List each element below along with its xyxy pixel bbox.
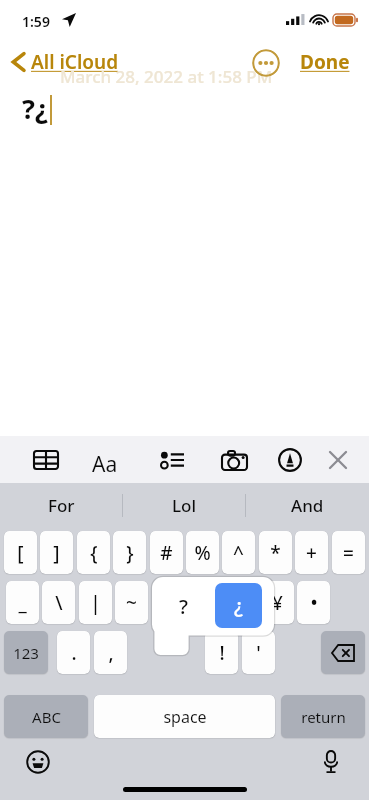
staticText: And: [291, 494, 324, 517]
staticText: space: [163, 706, 207, 728]
button[interactable]: For: [0, 483, 123, 528]
staticText: Aa: [92, 450, 118, 479]
button[interactable]: ?: [158, 581, 208, 631]
button[interactable]: {: [77, 531, 110, 574]
staticText: ^: [233, 540, 244, 566]
button[interactable]: return: [281, 695, 365, 738]
button[interactable]: }: [113, 531, 146, 574]
button[interactable]: Dictate: [315, 746, 347, 778]
button[interactable]: ABC: [4, 695, 88, 738]
button[interactable]: |: [79, 581, 112, 624]
button[interactable]: Close keyboard: [320, 442, 356, 478]
staticText: \: [55, 590, 63, 616]
button[interactable]: Markup: [272, 442, 308, 478]
button[interactable]: .: [57, 631, 90, 674]
staticText: ~: [126, 590, 137, 616]
button[interactable]: Done: [294, 46, 356, 78]
staticText: ¿: [234, 592, 243, 619]
staticText: Done: [300, 49, 350, 75]
staticText: =: [343, 540, 354, 566]
button[interactable]: ': [242, 631, 275, 674]
button[interactable]: More options: [252, 49, 280, 77]
button[interactable]: Table: [28, 442, 64, 478]
button[interactable]: _: [6, 581, 39, 624]
staticText: +: [306, 540, 317, 566]
staticText: For: [48, 494, 75, 517]
button[interactable]: *: [259, 531, 292, 574]
staticText: ': [256, 640, 261, 666]
staticText: ?¿: [22, 90, 48, 127]
button[interactable]: [: [4, 531, 37, 574]
staticText: {: [90, 540, 98, 566]
button[interactable]: Aa: [88, 446, 122, 483]
staticText: £: [235, 590, 246, 616]
staticText: All iCloud: [31, 49, 119, 75]
staticText: _: [18, 590, 27, 616]
button[interactable]: ¿: [215, 583, 262, 628]
button[interactable]: +: [295, 531, 328, 574]
staticText: #: [160, 540, 173, 566]
button[interactable]: Checklist: [154, 442, 190, 478]
button[interactable]: =: [332, 531, 365, 574]
button[interactable]: 123: [4, 631, 48, 674]
button[interactable]: ,: [94, 631, 127, 674]
button[interactable]: •: [297, 581, 330, 624]
staticText: Lol: [172, 494, 197, 517]
staticText: ?: [179, 593, 188, 620]
button[interactable]: #: [150, 531, 183, 574]
staticText: %: [194, 540, 211, 566]
staticText: return: [301, 707, 346, 727]
staticText: March 28, 2022 at 1:58 PM: [60, 65, 273, 88]
staticText: }: [126, 540, 134, 566]
staticText: ,: [108, 640, 114, 666]
staticText: ¥: [272, 590, 283, 616]
staticText: [: [17, 540, 24, 566]
staticText: |: [90, 590, 101, 616]
button[interactable]: And: [246, 483, 369, 528]
staticText: ABC: [32, 707, 61, 727]
staticText: *: [270, 540, 281, 566]
button[interactable]: Emoji: [22, 746, 54, 778]
staticText: 123: [13, 643, 39, 663]
button[interactable]: ~: [115, 581, 148, 624]
button[interactable]: !: [205, 631, 238, 674]
staticText: .: [71, 640, 77, 666]
staticText: !: [219, 640, 225, 666]
staticText: ]: [53, 540, 60, 566]
button[interactable]: Camera: [216, 442, 252, 478]
button[interactable]: \: [42, 581, 75, 624]
button[interactable]: Lol: [123, 483, 246, 528]
button[interactable]: ]: [40, 531, 73, 574]
button[interactable]: %: [186, 531, 219, 574]
button[interactable]: ^: [222, 531, 255, 574]
button[interactable]: £: [224, 581, 257, 624]
button[interactable]: Backspace: [321, 631, 365, 674]
staticText: 1:59: [22, 12, 50, 31]
staticText: •: [310, 590, 318, 616]
button[interactable]: space: [94, 695, 275, 738]
button[interactable]: All iCloud: [8, 46, 123, 78]
button[interactable]: ¥: [261, 581, 294, 624]
